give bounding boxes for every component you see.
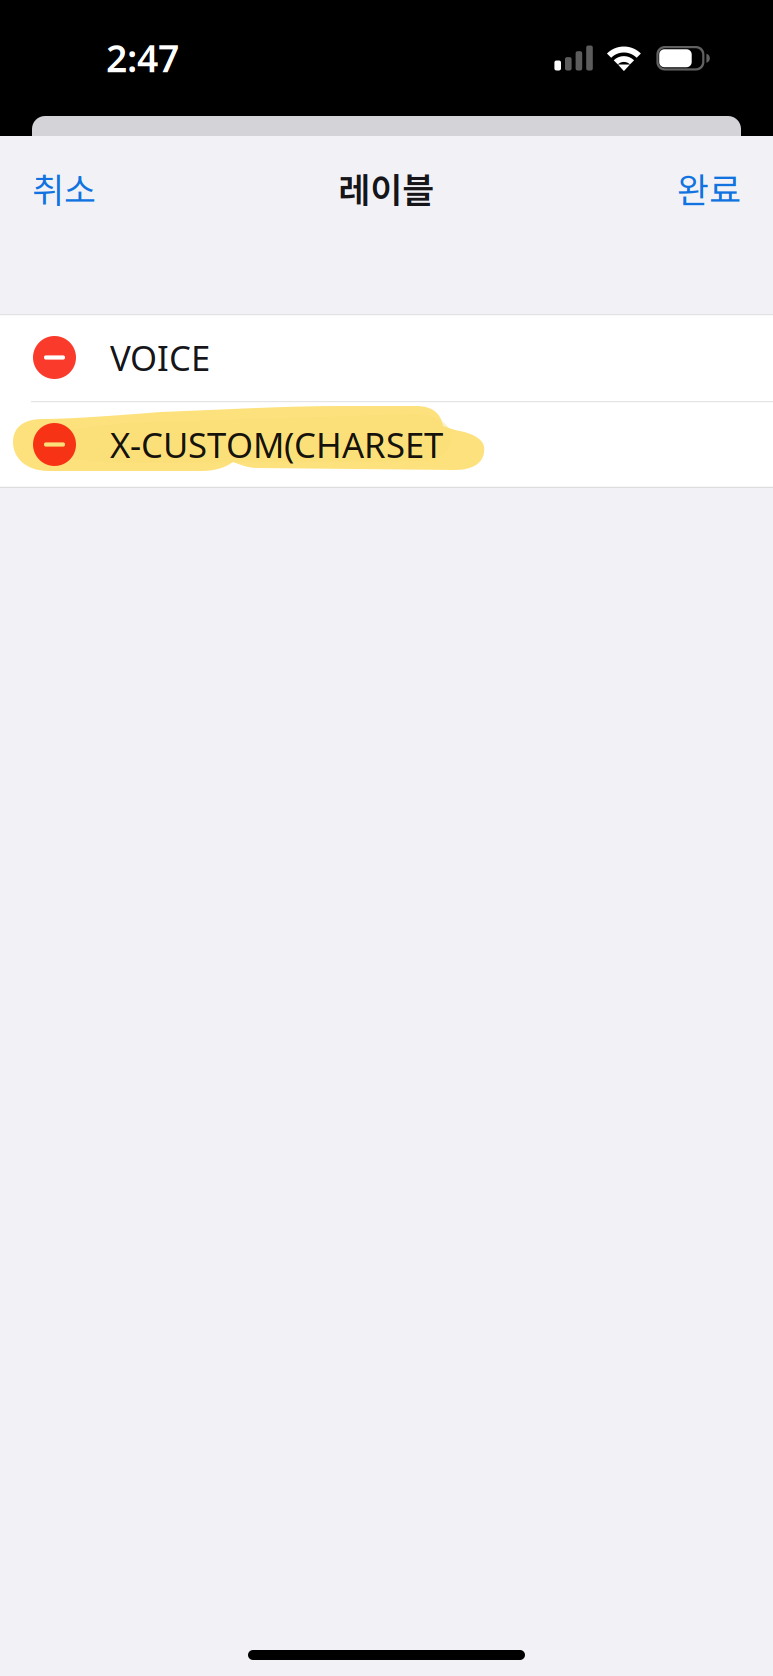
staticText: 레이블 xyxy=(338,163,434,213)
staticText: 취소 xyxy=(32,163,96,213)
staticText: 완료 xyxy=(677,163,741,213)
staticText: VOICE xyxy=(110,334,210,380)
button[interactable]: 완료 xyxy=(655,149,773,227)
button[interactable]: 취소 xyxy=(0,149,118,227)
button[interactable]: VOICE xyxy=(0,314,773,401)
staticText: 2:47 xyxy=(106,33,179,83)
button[interactable]: X-CUSTOM(CHARSET xyxy=(0,401,773,488)
staticText: X-CUSTOM(CHARSET xyxy=(110,421,443,467)
